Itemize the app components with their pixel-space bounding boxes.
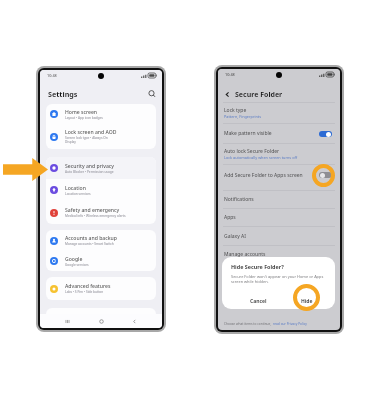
button[interactable]: Auto lock Secure Folder xyxy=(218,144,340,164)
button[interactable]: Home screen xyxy=(46,104,156,124)
staticText: Screen lock type • Always On Display xyxy=(65,136,108,144)
staticText: Hide Secure Folder? xyxy=(231,263,284,270)
button[interactable]: Add Secure Folder to Apps screen xyxy=(319,172,332,178)
button[interactable]: Location xyxy=(46,179,156,201)
staticText: 10:48 xyxy=(225,72,235,77)
button[interactable]: Accounts and backup xyxy=(46,230,156,251)
staticText: Layout • App icon badges xyxy=(65,116,103,120)
staticText: Auto lock Secure Folder xyxy=(224,148,280,155)
staticText: Google xyxy=(65,256,83,263)
staticText: Advanced features xyxy=(65,283,111,290)
staticText: Notifications xyxy=(224,196,254,203)
button[interactable]: Cancel xyxy=(234,293,282,309)
staticText: Safety and emergency xyxy=(65,207,120,214)
staticText: Manage accounts xyxy=(224,251,266,258)
staticText: Add Secure Folder to Apps screen xyxy=(224,172,303,179)
staticText: Galaxy AI xyxy=(224,233,246,240)
button[interactable]: Lock type xyxy=(218,103,340,123)
staticText: Google services xyxy=(65,263,89,267)
button[interactable]: Safety and emergency xyxy=(46,201,156,224)
staticText: Hide xyxy=(301,298,313,305)
button[interactable]: Home xyxy=(96,316,107,327)
staticText: Labs • S Pen • Side button xyxy=(65,290,104,294)
button[interactable]: Galaxy AI xyxy=(218,227,340,245)
staticText: Location xyxy=(65,185,86,192)
staticText: Auto Blocker • Permission usage xyxy=(65,170,114,174)
button[interactable]: Digital Wellbeing xyxy=(46,308,156,328)
staticText: 10:48 xyxy=(47,73,57,78)
button[interactable]: Make pattern visible xyxy=(319,131,332,137)
staticText: Digital Wellbeing xyxy=(65,313,107,320)
staticText: read our Privacy Policy xyxy=(273,322,307,326)
button[interactable]: Back xyxy=(223,90,232,99)
staticText: Accounts and backup xyxy=(65,235,117,242)
staticText: Home screen xyxy=(65,109,98,116)
button[interactable]: Back xyxy=(129,316,140,327)
button[interactable]: Google xyxy=(46,251,156,271)
button[interactable]: Add Secure Folder to Apps screen xyxy=(218,165,340,185)
button[interactable]: Advanced features xyxy=(46,277,156,300)
button[interactable]: Recents xyxy=(62,316,73,327)
button[interactable]: Search xyxy=(147,89,157,99)
staticText: Medical info • Wireless emergency alerts xyxy=(65,214,126,218)
staticText: Manage accounts • Smart Switch xyxy=(65,242,114,246)
staticText: Settings xyxy=(48,89,78,99)
button[interactable]: Hide xyxy=(282,293,331,309)
button[interactable]: Security and privacy xyxy=(46,157,156,179)
staticText: Location services xyxy=(65,192,91,196)
staticText: Lock automatically when screen turns off xyxy=(224,155,298,160)
staticText: Choose what items to continue, xyxy=(224,322,273,326)
button[interactable]: Make pattern visible xyxy=(218,124,340,143)
staticText: Apps xyxy=(224,214,236,221)
button[interactable]: Notifications xyxy=(218,191,340,208)
staticText: Pattern, Fingerprints xyxy=(224,114,261,119)
button[interactable]: Lock screen and AOD xyxy=(46,124,156,149)
staticText: Secure Folder xyxy=(235,90,283,100)
staticText: Secure Folder won't appear on your Home … xyxy=(231,274,328,284)
staticText: Screen time • App timers xyxy=(65,320,102,324)
button[interactable]: Apps xyxy=(218,209,340,226)
staticText: Make pattern visible xyxy=(224,130,272,137)
staticText: Lock screen and AOD xyxy=(65,129,117,136)
button[interactable]: Manage accounts xyxy=(218,246,340,263)
staticText: Lock type xyxy=(224,107,247,114)
staticText: Cancel xyxy=(250,298,267,305)
staticText: Security and privacy xyxy=(65,163,114,170)
